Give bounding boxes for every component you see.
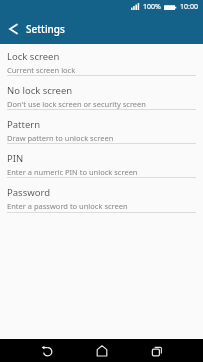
staticText: PIN	[7, 152, 24, 165]
staticText: Password	[7, 186, 50, 199]
button[interactable]: Password	[0, 178, 203, 213]
staticText: 10:00	[180, 2, 198, 12]
button[interactable]: Lock screen	[0, 44, 203, 76]
staticText: Enter a password to unlock screen	[7, 201, 128, 211]
button[interactable]: No lock screen	[0, 76, 203, 110]
button[interactable]	[0, 14, 26, 44]
staticText: Pattern	[7, 118, 41, 131]
staticText: Draw pattern to unlock screen	[7, 133, 114, 143]
staticText: Current screen lock	[7, 65, 76, 75]
button[interactable]: Pattern	[0, 110, 203, 144]
staticText: No lock screen	[7, 84, 73, 97]
button[interactable]: PIN	[0, 144, 203, 178]
staticText: Settings	[26, 22, 65, 36]
staticText: Lock screen	[7, 50, 60, 63]
button[interactable]	[19, 339, 74, 362]
staticText: 100%	[143, 2, 161, 12]
staticText: Enter a numeric PIN to unlock screen	[7, 167, 138, 177]
button[interactable]	[74, 339, 129, 362]
staticText: Don't use lock screen or security screen	[7, 99, 146, 109]
button[interactable]	[129, 339, 184, 362]
